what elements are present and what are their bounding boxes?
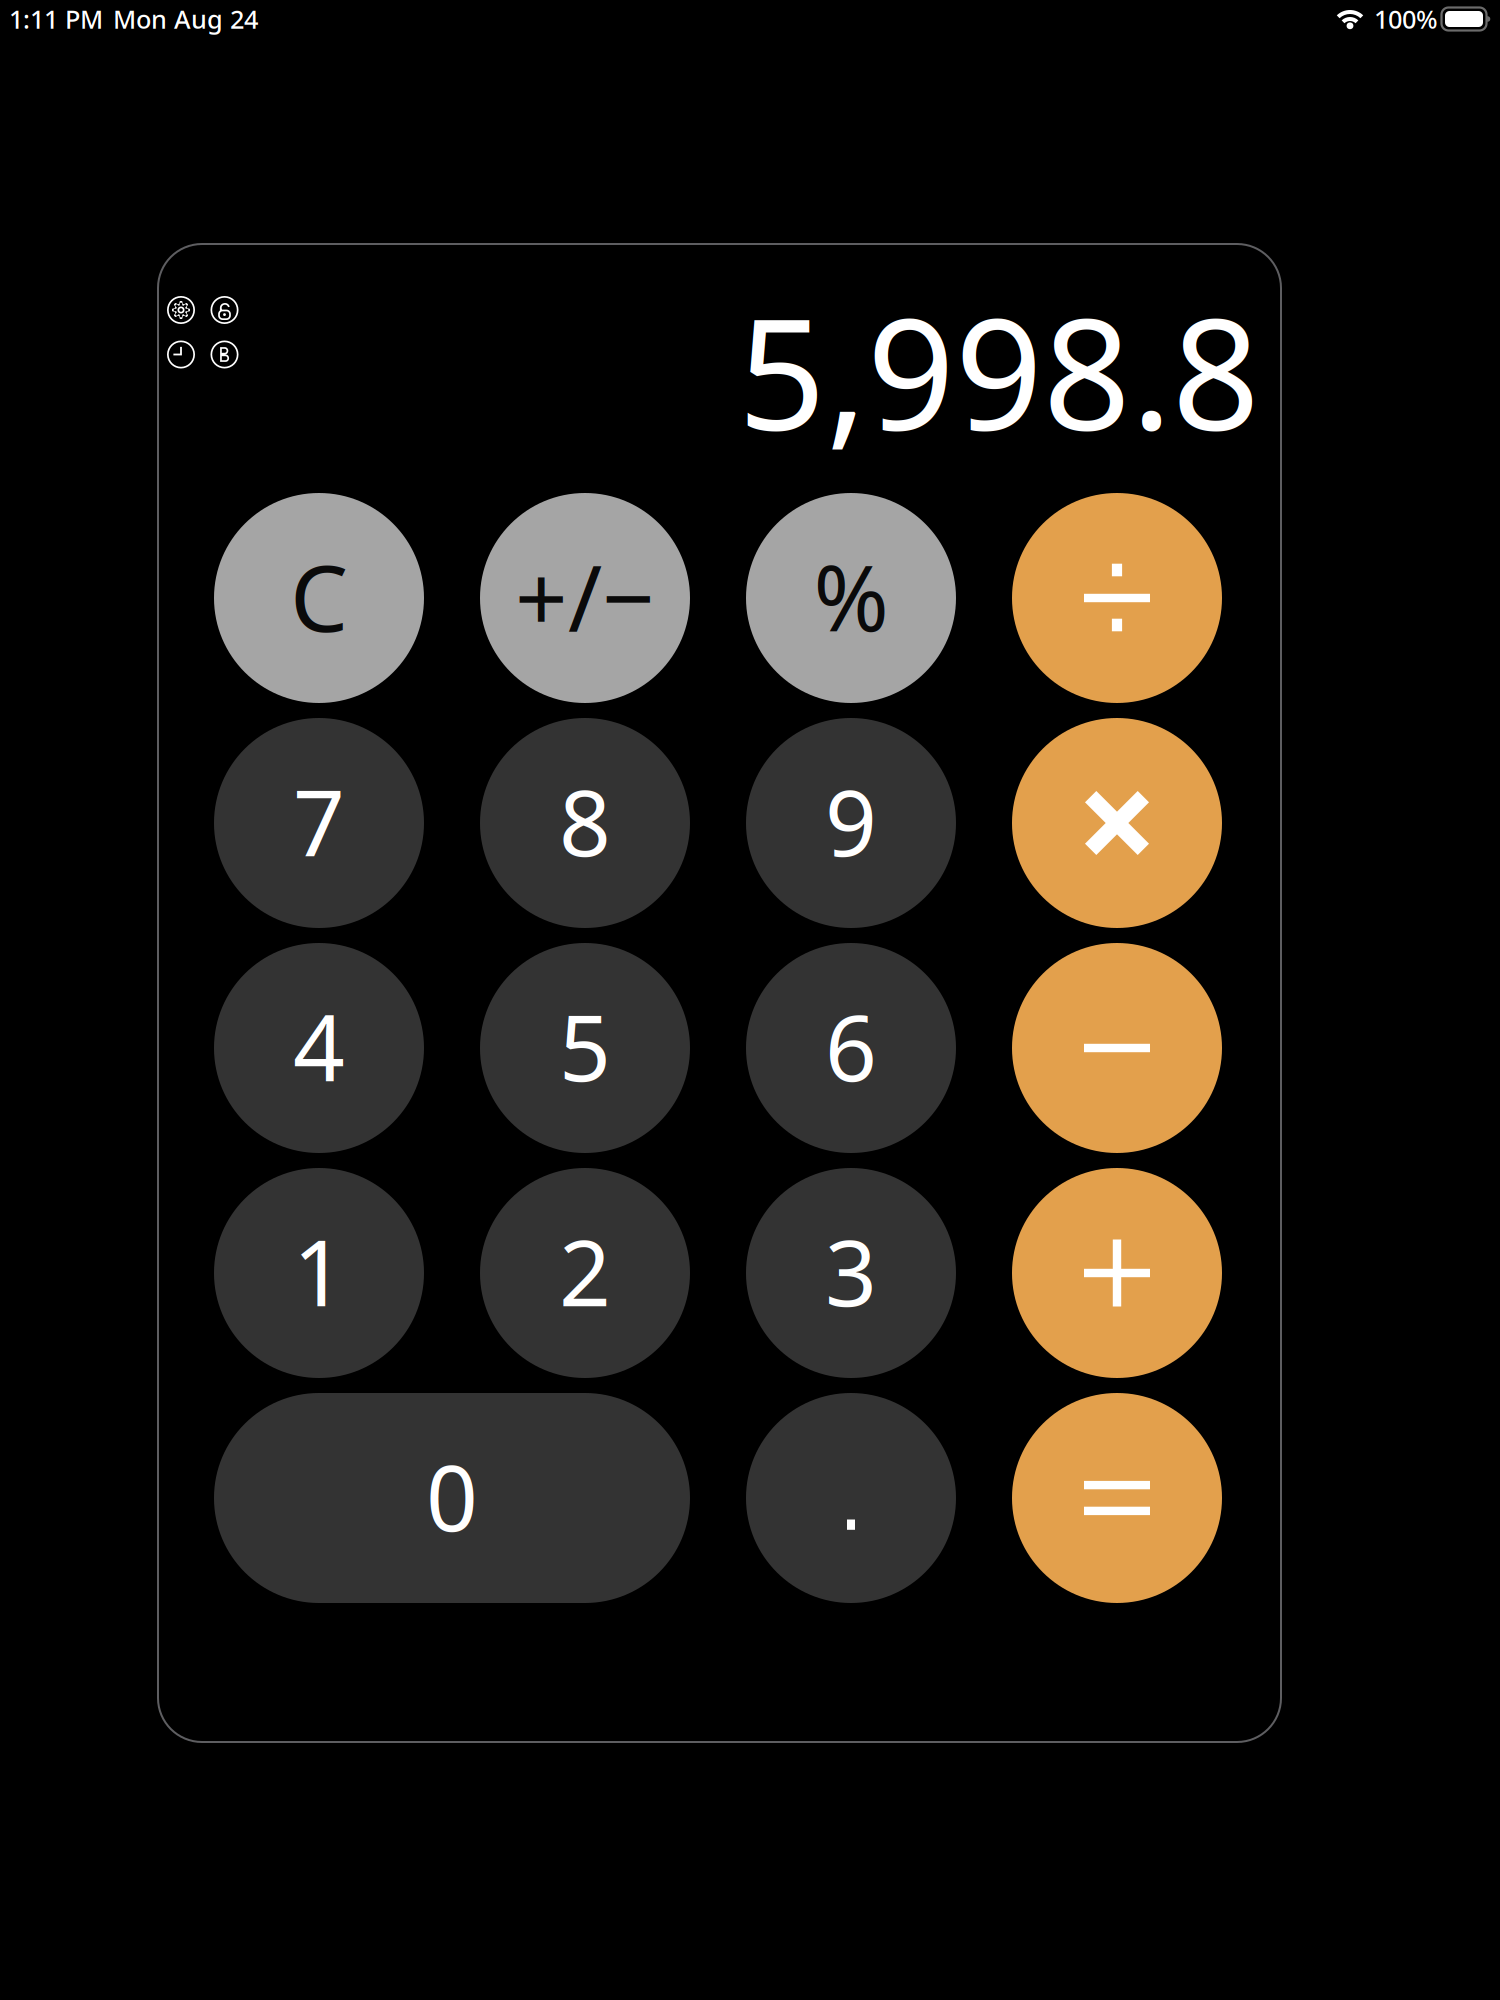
- button[interactable]: History: [163, 336, 199, 372]
- button[interactable]: +/−: [480, 493, 690, 703]
- staticText: %: [813, 536, 888, 656]
- staticText: 100%: [1374, 2, 1438, 36]
- staticText: 5,998.8: [738, 268, 1260, 472]
- staticText: C: [290, 535, 348, 657]
- button[interactable]: Lock: [206, 292, 242, 328]
- button[interactable]: Divide: [1012, 493, 1222, 703]
- staticText: +/−: [515, 535, 655, 657]
- staticText: Mon Aug 24: [113, 2, 258, 36]
- button[interactable]: 4: [214, 943, 424, 1153]
- staticText: 4: [293, 986, 345, 1106]
- button[interactable]: Multiply: [1012, 718, 1222, 928]
- button[interactable]: Decimal point: [746, 1393, 956, 1603]
- button[interactable]: C: [214, 493, 424, 703]
- staticText: 3: [825, 1211, 877, 1331]
- staticText: 6: [825, 986, 877, 1106]
- button[interactable]: Minus: [1012, 943, 1222, 1153]
- staticText: 5: [559, 986, 611, 1106]
- button[interactable]: Equals: [1012, 1393, 1222, 1603]
- staticText: 8: [559, 761, 611, 881]
- staticText: 0: [426, 1436, 478, 1556]
- button[interactable]: 5: [480, 943, 690, 1153]
- button[interactable]: 6: [746, 943, 956, 1153]
- button[interactable]: Settings: [163, 292, 199, 328]
- button[interactable]: 7: [214, 718, 424, 928]
- button[interactable]: 9: [746, 718, 956, 928]
- button[interactable]: 2: [480, 1168, 690, 1378]
- button[interactable]: %: [746, 493, 956, 703]
- staticText: 2: [559, 1211, 611, 1331]
- button[interactable]: Plus: [1012, 1168, 1222, 1378]
- button[interactable]: 1: [214, 1168, 424, 1378]
- staticText: 1: [293, 1211, 345, 1331]
- button[interactable]: 0: [214, 1393, 690, 1603]
- staticText: 1:11 PM: [9, 2, 103, 36]
- button[interactable]: Bluetooth: [206, 336, 242, 372]
- staticText: 7: [293, 761, 345, 881]
- button[interactable]: 8: [480, 718, 690, 928]
- staticText: 9: [825, 761, 877, 881]
- button[interactable]: 3: [746, 1168, 956, 1378]
